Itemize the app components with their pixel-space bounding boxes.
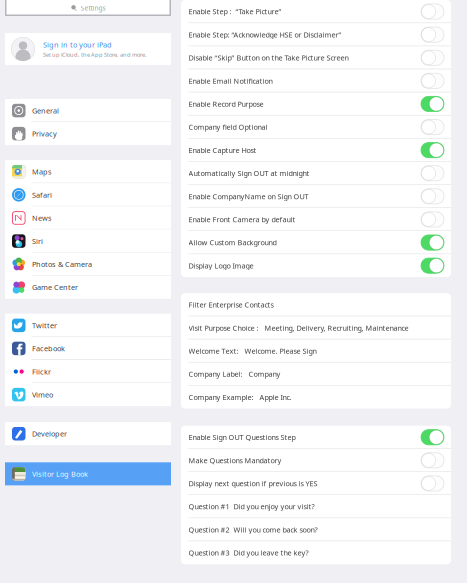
staticText: Enable CompanyName on Sign OUT [188, 191, 308, 201]
button[interactable]: Visit Purpose Choice : Meeting, Delivery… [181, 316, 451, 339]
button[interactable]: Enable Record Purpose [181, 92, 451, 115]
button[interactable]: Display next question if previous is YES [181, 472, 451, 495]
button[interactable]: Visitor Log Book [5, 462, 171, 485]
button[interactable]: Make Questions Mandatory [181, 449, 451, 472]
button[interactable]: Filter Enterprise Contacts [181, 293, 451, 316]
staticText: Visitor Log Book [32, 469, 88, 479]
staticText: Visit Purpose Choice : Meeting, Delivery… [188, 323, 408, 333]
button[interactable]: Question #3 Did you leave the key? [181, 541, 451, 564]
button[interactable]: Facebook [5, 337, 171, 360]
button[interactable]: Photos & Camera [5, 253, 171, 276]
staticText: Question #1 Did you enjoy your visit? [188, 502, 314, 511]
button[interactable]: Welcome Text: Welcome. Please Sign [181, 339, 451, 362]
staticText: Settings [80, 3, 105, 13]
staticText: Question #3 Did you leave the key? [188, 548, 308, 558]
button[interactable]: Sign in to your iPad [5, 33, 171, 65]
staticText: Game Center [32, 282, 78, 292]
staticText: Display Logo Image [188, 261, 253, 271]
button[interactable]: Flickr [5, 360, 171, 383]
staticText: Enable Email Notification [188, 76, 272, 86]
staticText: Photos & Camera [32, 259, 92, 269]
staticText: Disable “Skip” Button on the Take Pictur… [188, 53, 348, 63]
staticText: Company Label: Company [188, 369, 280, 379]
staticText: Enable Sign OUT Questions Step [188, 432, 295, 442]
button[interactable]: Safari [5, 183, 171, 206]
staticText: Company Example: Apple Inc. [188, 392, 291, 402]
button[interactable]: Siri [5, 229, 171, 253]
staticText: General [32, 106, 59, 116]
button[interactable]: Display Logo Image [181, 254, 451, 277]
button[interactable]: Enable Capture Host [181, 139, 451, 162]
staticText: Siri [32, 236, 43, 246]
button[interactable]: Enable Email Notification [181, 69, 451, 92]
button[interactable]: Disable “Skip” Button on the Take Pictur… [181, 46, 451, 69]
staticText: Safari [32, 190, 52, 200]
button[interactable]: Question #1 Did you enjoy your visit? [181, 495, 451, 518]
staticText: Enable Record Purpose [188, 99, 263, 109]
staticText: Enable Step : “Take Picture” [188, 7, 281, 16]
button[interactable]: Enable Step: “Acknowledge HSE or Disclai… [181, 23, 451, 46]
button[interactable]: Privacy [5, 122, 171, 145]
staticText: Display next question if previous is YES [188, 478, 317, 488]
staticText: Twitter [32, 320, 57, 330]
button[interactable]: News [5, 206, 171, 229]
staticText: Privacy [32, 129, 57, 139]
staticText: Flickr [32, 367, 51, 377]
button[interactable]: Enable Step : “Take Picture” [181, 0, 451, 23]
button[interactable]: Allow Custom Background [181, 231, 451, 254]
button[interactable]: Enable Sign OUT Questions Step [181, 426, 451, 449]
staticText: Question #2 Will you come back soon? [188, 525, 317, 535]
staticText: Company field Optional [188, 122, 267, 132]
button[interactable]: General [5, 99, 171, 122]
button[interactable]: Company field Optional [181, 115, 451, 139]
staticText: Make Questions Mandatory [188, 455, 281, 465]
button[interactable]: Maps [5, 160, 171, 183]
staticText: Enable Step: “Acknowledge HSE or Disclai… [188, 30, 341, 40]
button[interactable]: Twitter [5, 314, 171, 337]
staticText: Set up iCloud, the App Store, and more. [43, 51, 147, 58]
button[interactable]: Vimeo [5, 383, 171, 406]
staticText: Developer [32, 429, 67, 439]
staticText: Automatically Sign OUT at midnight [188, 168, 309, 178]
button[interactable]: Company Example: Apple Inc. [181, 386, 451, 409]
staticText: Welcome Text: Welcome. Please Sign [188, 346, 316, 356]
button[interactable]: Developer [5, 422, 171, 445]
staticText: Filter Enterprise Contacts [188, 300, 273, 310]
staticText: News [32, 213, 52, 223]
staticText: Enable Capture Host [188, 145, 256, 155]
button[interactable]: Question #2 Will you come back soon? [181, 518, 451, 541]
staticText: Allow Custom Background [188, 238, 276, 247]
button[interactable]: Automatically Sign OUT at midnight [181, 162, 451, 185]
staticText: Vimeo [32, 390, 53, 400]
button[interactable]: Company Label: Company [181, 362, 451, 386]
staticText: Maps [32, 167, 52, 177]
button[interactable]: Game Center [5, 276, 171, 299]
staticText: Enable Front Camera by default [188, 214, 295, 224]
button[interactable]: Enable Front Camera by default [181, 208, 451, 231]
staticText: Facebook [32, 343, 65, 353]
button[interactable]: Enable CompanyName on Sign OUT [181, 185, 451, 208]
staticText: Sign in to your iPad [43, 40, 112, 50]
